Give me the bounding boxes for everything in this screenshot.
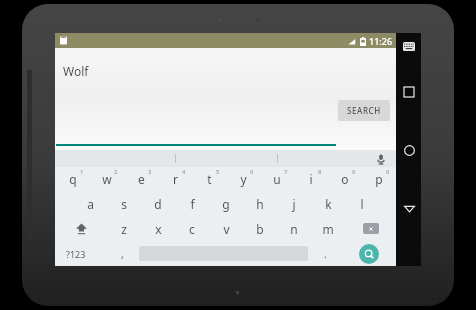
staticText: 7 xyxy=(284,168,288,176)
staticText: SEARCH xyxy=(347,105,381,116)
staticText: g xyxy=(222,196,230,212)
staticText: 3 xyxy=(148,168,152,176)
staticText: p xyxy=(375,171,383,187)
staticText: 8 xyxy=(318,168,322,176)
button[interactable]: g xyxy=(209,191,243,216)
button[interactable]: h xyxy=(243,191,277,216)
staticText: 11:26 xyxy=(369,35,393,47)
button[interactable]: Shift xyxy=(55,216,107,241)
button[interactable]: t xyxy=(192,167,226,191)
button[interactable]: w xyxy=(90,167,124,191)
button[interactable]: Hide keyboard xyxy=(400,199,418,217)
button[interactable]: q xyxy=(55,167,90,191)
button[interactable]: i xyxy=(294,167,328,191)
staticText: 9 xyxy=(352,168,356,176)
button[interactable]: e xyxy=(124,167,158,191)
staticText: f xyxy=(190,196,195,212)
button[interactable]: ?123 xyxy=(55,241,105,266)
staticText: o xyxy=(341,171,349,187)
staticText: c xyxy=(189,221,195,237)
button[interactable]: f xyxy=(175,191,209,216)
staticText: u xyxy=(273,171,281,187)
staticText: m xyxy=(322,221,334,237)
staticText: x xyxy=(155,221,162,237)
button[interactable]: Backspace xyxy=(345,216,396,241)
button[interactable]: Recents xyxy=(400,83,418,101)
button[interactable]: u xyxy=(260,167,294,191)
button[interactable]: SEARCH xyxy=(338,100,390,121)
button[interactable]: . xyxy=(308,241,342,266)
button[interactable]: Voice input xyxy=(374,152,388,166)
staticText: 2 xyxy=(114,168,118,176)
staticText: , xyxy=(121,247,124,261)
button[interactable]: v xyxy=(209,216,243,241)
button[interactable]: , xyxy=(105,241,139,266)
staticText: 5 xyxy=(216,168,220,176)
staticText: 1 xyxy=(80,168,84,176)
staticText: k xyxy=(325,196,332,212)
button[interactable]: k xyxy=(311,191,345,216)
button[interactable]: n xyxy=(277,216,311,241)
staticText: h xyxy=(256,196,264,212)
button[interactable]: l xyxy=(345,191,379,216)
staticText: s xyxy=(121,196,127,212)
staticText: ?123 xyxy=(66,248,86,260)
button[interactable]: p xyxy=(362,167,396,191)
button[interactable]: o xyxy=(328,167,362,191)
staticText: v xyxy=(223,221,230,237)
button[interactable]: r xyxy=(158,167,192,191)
button[interactable]: Keyboard xyxy=(402,39,416,53)
staticText: . xyxy=(324,247,327,261)
button[interactable]: a xyxy=(73,191,107,216)
staticText: q xyxy=(69,171,77,187)
staticText: n xyxy=(290,221,298,237)
button[interactable]: c xyxy=(175,216,209,241)
staticText: b xyxy=(256,221,264,237)
staticText: d xyxy=(154,196,162,212)
button[interactable]: y xyxy=(226,167,260,191)
staticText: j xyxy=(292,196,296,212)
staticText: l xyxy=(360,196,364,212)
button[interactable]: b xyxy=(243,216,277,241)
staticText: y xyxy=(240,171,247,187)
button[interactable]: Home xyxy=(400,141,418,159)
button[interactable]: d xyxy=(141,191,175,216)
staticText: 0 xyxy=(386,168,390,176)
button[interactable]: m xyxy=(311,216,345,241)
staticText: 6 xyxy=(250,168,254,176)
staticText: a xyxy=(87,196,94,212)
staticText: i xyxy=(309,171,313,187)
button[interactable]: j xyxy=(277,191,311,216)
staticText: r xyxy=(173,171,178,187)
staticText: 4 xyxy=(182,168,186,176)
button[interactable]: x xyxy=(141,216,175,241)
button[interactable]: s xyxy=(107,191,141,216)
staticText: z xyxy=(121,221,127,237)
staticText: Wolf xyxy=(63,63,89,79)
staticText: w xyxy=(102,171,112,187)
button[interactable]: Search xyxy=(342,241,396,266)
button[interactable]: z xyxy=(107,216,141,241)
staticText: e xyxy=(138,171,145,187)
staticText: t xyxy=(207,171,212,187)
